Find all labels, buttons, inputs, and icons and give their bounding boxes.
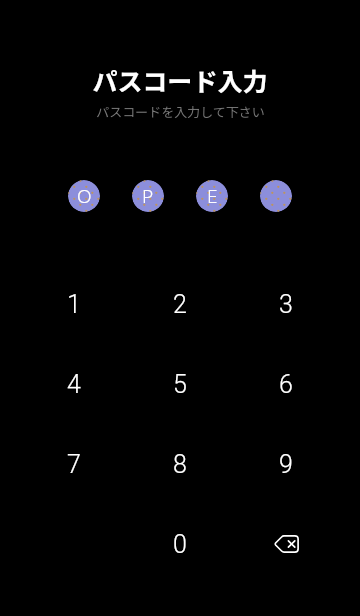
- button[interactable]: 4: [21, 344, 127, 424]
- staticText: パスコードを入力して下さい: [96, 102, 265, 121]
- staticText: E: [207, 183, 218, 209]
- button[interactable]: 0: [127, 504, 233, 584]
- staticText: 3: [279, 290, 293, 319]
- button[interactable]: 5: [127, 344, 233, 424]
- button[interactable]: 8: [127, 424, 233, 504]
- staticText: 9: [279, 450, 293, 479]
- staticText: 8: [173, 450, 187, 479]
- staticText: 4: [67, 370, 81, 399]
- staticText: 1: [67, 290, 81, 319]
- staticText: P: [142, 183, 154, 209]
- staticText: 0: [173, 530, 187, 559]
- button[interactable]: 6: [233, 344, 339, 424]
- staticText: 6: [279, 370, 293, 399]
- button[interactable]: 7: [21, 424, 127, 504]
- button[interactable]: 3: [233, 264, 339, 344]
- button[interactable]: Backspace: [233, 504, 339, 584]
- staticText: 2: [173, 290, 187, 319]
- button[interactable]: 1: [21, 264, 127, 344]
- button[interactable]: 9: [233, 424, 339, 504]
- button[interactable]: 2: [127, 264, 233, 344]
- staticText: O: [77, 183, 92, 209]
- staticText: パスコード入力: [92, 62, 268, 98]
- staticText: 5: [173, 370, 187, 399]
- staticText: 7: [67, 450, 81, 479]
